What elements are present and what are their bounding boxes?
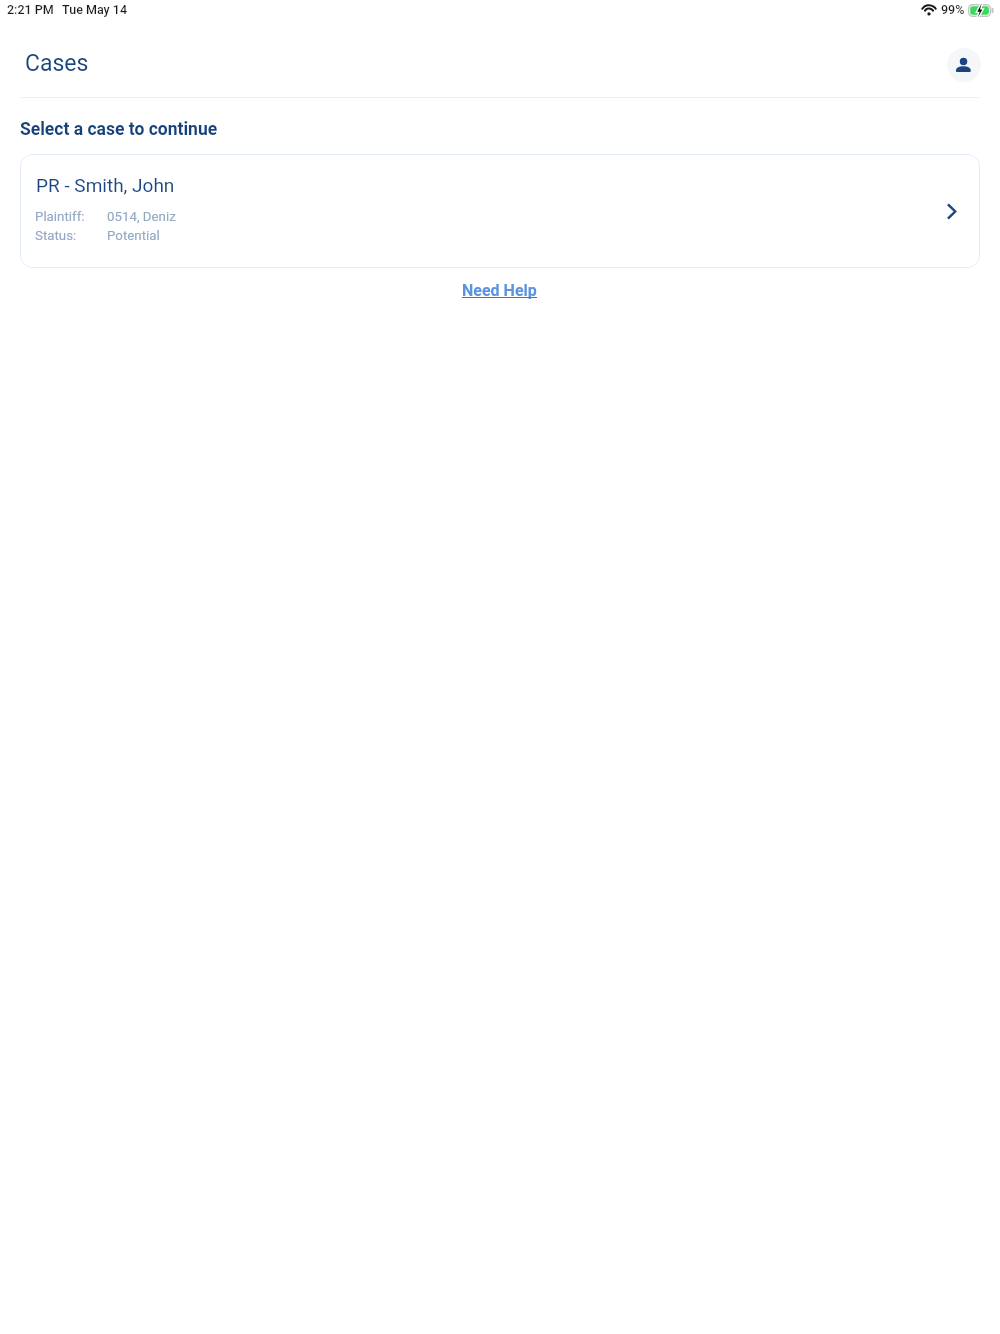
staticText: PR - Smith, John	[36, 174, 175, 196]
button[interactable]: Profile	[947, 48, 981, 82]
staticText: Select a case to continue	[20, 119, 218, 140]
staticText: Tue May 14	[62, 2, 127, 17]
staticText: Plaintiff:	[35, 209, 85, 225]
staticText: 2:21 PM	[7, 2, 54, 17]
staticText: Cases	[25, 50, 89, 77]
button[interactable]: PR - Smith, John	[20, 154, 980, 268]
staticText: Need Help	[462, 281, 537, 299]
staticText: 0514, Deniz	[107, 209, 176, 225]
staticText: Status:	[35, 228, 77, 244]
staticText: Potential	[107, 228, 160, 244]
button[interactable]: Need Help	[462, 281, 537, 299]
staticText: 99%	[941, 2, 965, 17]
